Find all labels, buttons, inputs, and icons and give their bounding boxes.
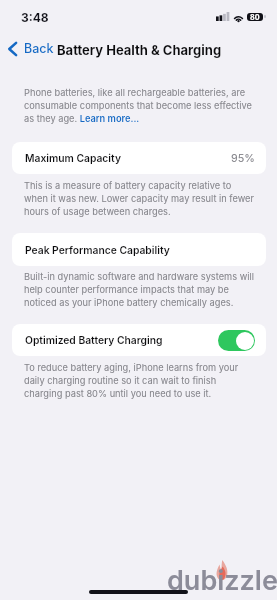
staticText: Battery Health & Charging bbox=[57, 42, 222, 58]
button[interactable]: Back bbox=[4, 38, 57, 59]
staticText: Built-in dynamic software and hardware s… bbox=[24, 269, 254, 308]
other: Cellular signal bbox=[216, 12, 229, 21]
staticText: To reduce battery aging, iPhone learns f… bbox=[24, 360, 254, 399]
button[interactable]: Optimized Battery Charging bbox=[12, 324, 266, 356]
staticText: 3:48 bbox=[21, 10, 49, 25]
staticText: 80 bbox=[250, 13, 260, 21]
button[interactable]: Maximum Capacity bbox=[12, 142, 266, 174]
button[interactable]: Peak Performance Capability bbox=[12, 233, 266, 266]
button[interactable]: Optimized Battery Charging, on bbox=[218, 330, 255, 351]
staticText: Back bbox=[24, 41, 54, 56]
staticText: Phone batteries, like all rechargeable b… bbox=[24, 85, 254, 124]
staticText: Maximum Capacity bbox=[25, 152, 121, 164]
staticText: Optimized Battery Charging bbox=[25, 334, 163, 346]
staticText: Peak Performance Capability bbox=[25, 244, 170, 256]
staticText: This is a measure of battery capacity re… bbox=[24, 178, 254, 217]
staticText: dubizzle bbox=[167, 564, 277, 597]
staticText: 95% bbox=[231, 152, 255, 165]
other: Wi-Fi bbox=[233, 13, 244, 22]
